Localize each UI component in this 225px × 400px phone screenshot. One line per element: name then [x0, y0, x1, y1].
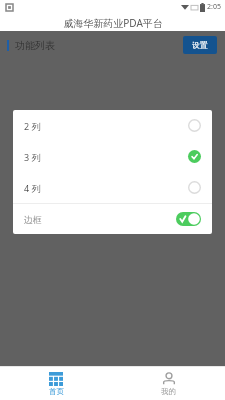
- staticText: 边框: [24, 214, 42, 225]
- staticText: 4 列: [24, 182, 41, 194]
- staticText: 设置: [192, 40, 208, 50]
- button[interactable]: 2 列: [13, 110, 212, 141]
- button[interactable]: 4 列: [13, 172, 212, 203]
- button[interactable]: Profile: [112, 367, 225, 400]
- button[interactable]: 3 列: [13, 141, 212, 172]
- staticText: 3 列: [24, 151, 41, 163]
- staticText: 功能列表: [15, 39, 55, 52]
- staticText: 威海华新药业PDA平台: [63, 16, 163, 30]
- button[interactable]: Home: [0, 367, 112, 400]
- button[interactable]: 边框: [13, 204, 212, 234]
- button[interactable]: 设置: [183, 36, 217, 54]
- staticText: 我的: [161, 387, 176, 396]
- staticText: 首页: [49, 387, 64, 396]
- staticText: 2 列: [24, 120, 41, 132]
- staticText: 2:05: [207, 2, 221, 12]
